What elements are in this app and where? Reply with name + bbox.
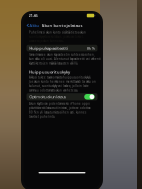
staticText: Optimoitu akun lataus [29, 94, 66, 99]
staticText: kulunut, suorituskyky voi laskea, jolloi… [29, 84, 89, 88]
staticText: Akun kunto ja lataus [41, 23, 82, 28]
staticText: Akkusi tukee tavanomaista huippusuoritus… [29, 76, 91, 79]
staticText: Akku [29, 23, 38, 28]
staticText: päivittäisestä latausrutiinistasi, jotta… [29, 106, 90, 110]
staticText: sammuu odottamatta akun vanhetessa. [29, 89, 78, 92]
staticText: Jos akun kunto heikkenee merkittävästi t… [29, 80, 96, 83]
staticText: käyttökertojen määrää latausten välillä. [29, 62, 78, 65]
staticText: Akun käyttöiän pidentämiseksi iPhone opp… [29, 102, 90, 105]
staticText: Lisätietoja akun kunnosta… [29, 39, 64, 43]
staticText: 80 %:n yli latautumista siihen asti, kun… [29, 111, 86, 114]
staticText: 21.46 [28, 13, 37, 18]
staticText: kun akku oli uusi. Alentunut kapasiteett… [29, 57, 102, 61]
staticText: Tämä ilmaisee akun kapasiteetin suhteess… [29, 53, 95, 56]
button[interactable]: Optimoitu akun lataus [26, 93, 97, 100]
staticText: tarvitset puhelinta. [29, 115, 55, 118]
button[interactable]: Akku [23, 22, 38, 29]
staticText: 86 % [87, 45, 95, 51]
staticText: Huippusuorituskyky [29, 69, 70, 75]
staticText: Huippukapasiteetti [29, 45, 68, 51]
staticText: Puhelimesi akun kunto sisältää tietoa ak… [29, 31, 86, 34]
